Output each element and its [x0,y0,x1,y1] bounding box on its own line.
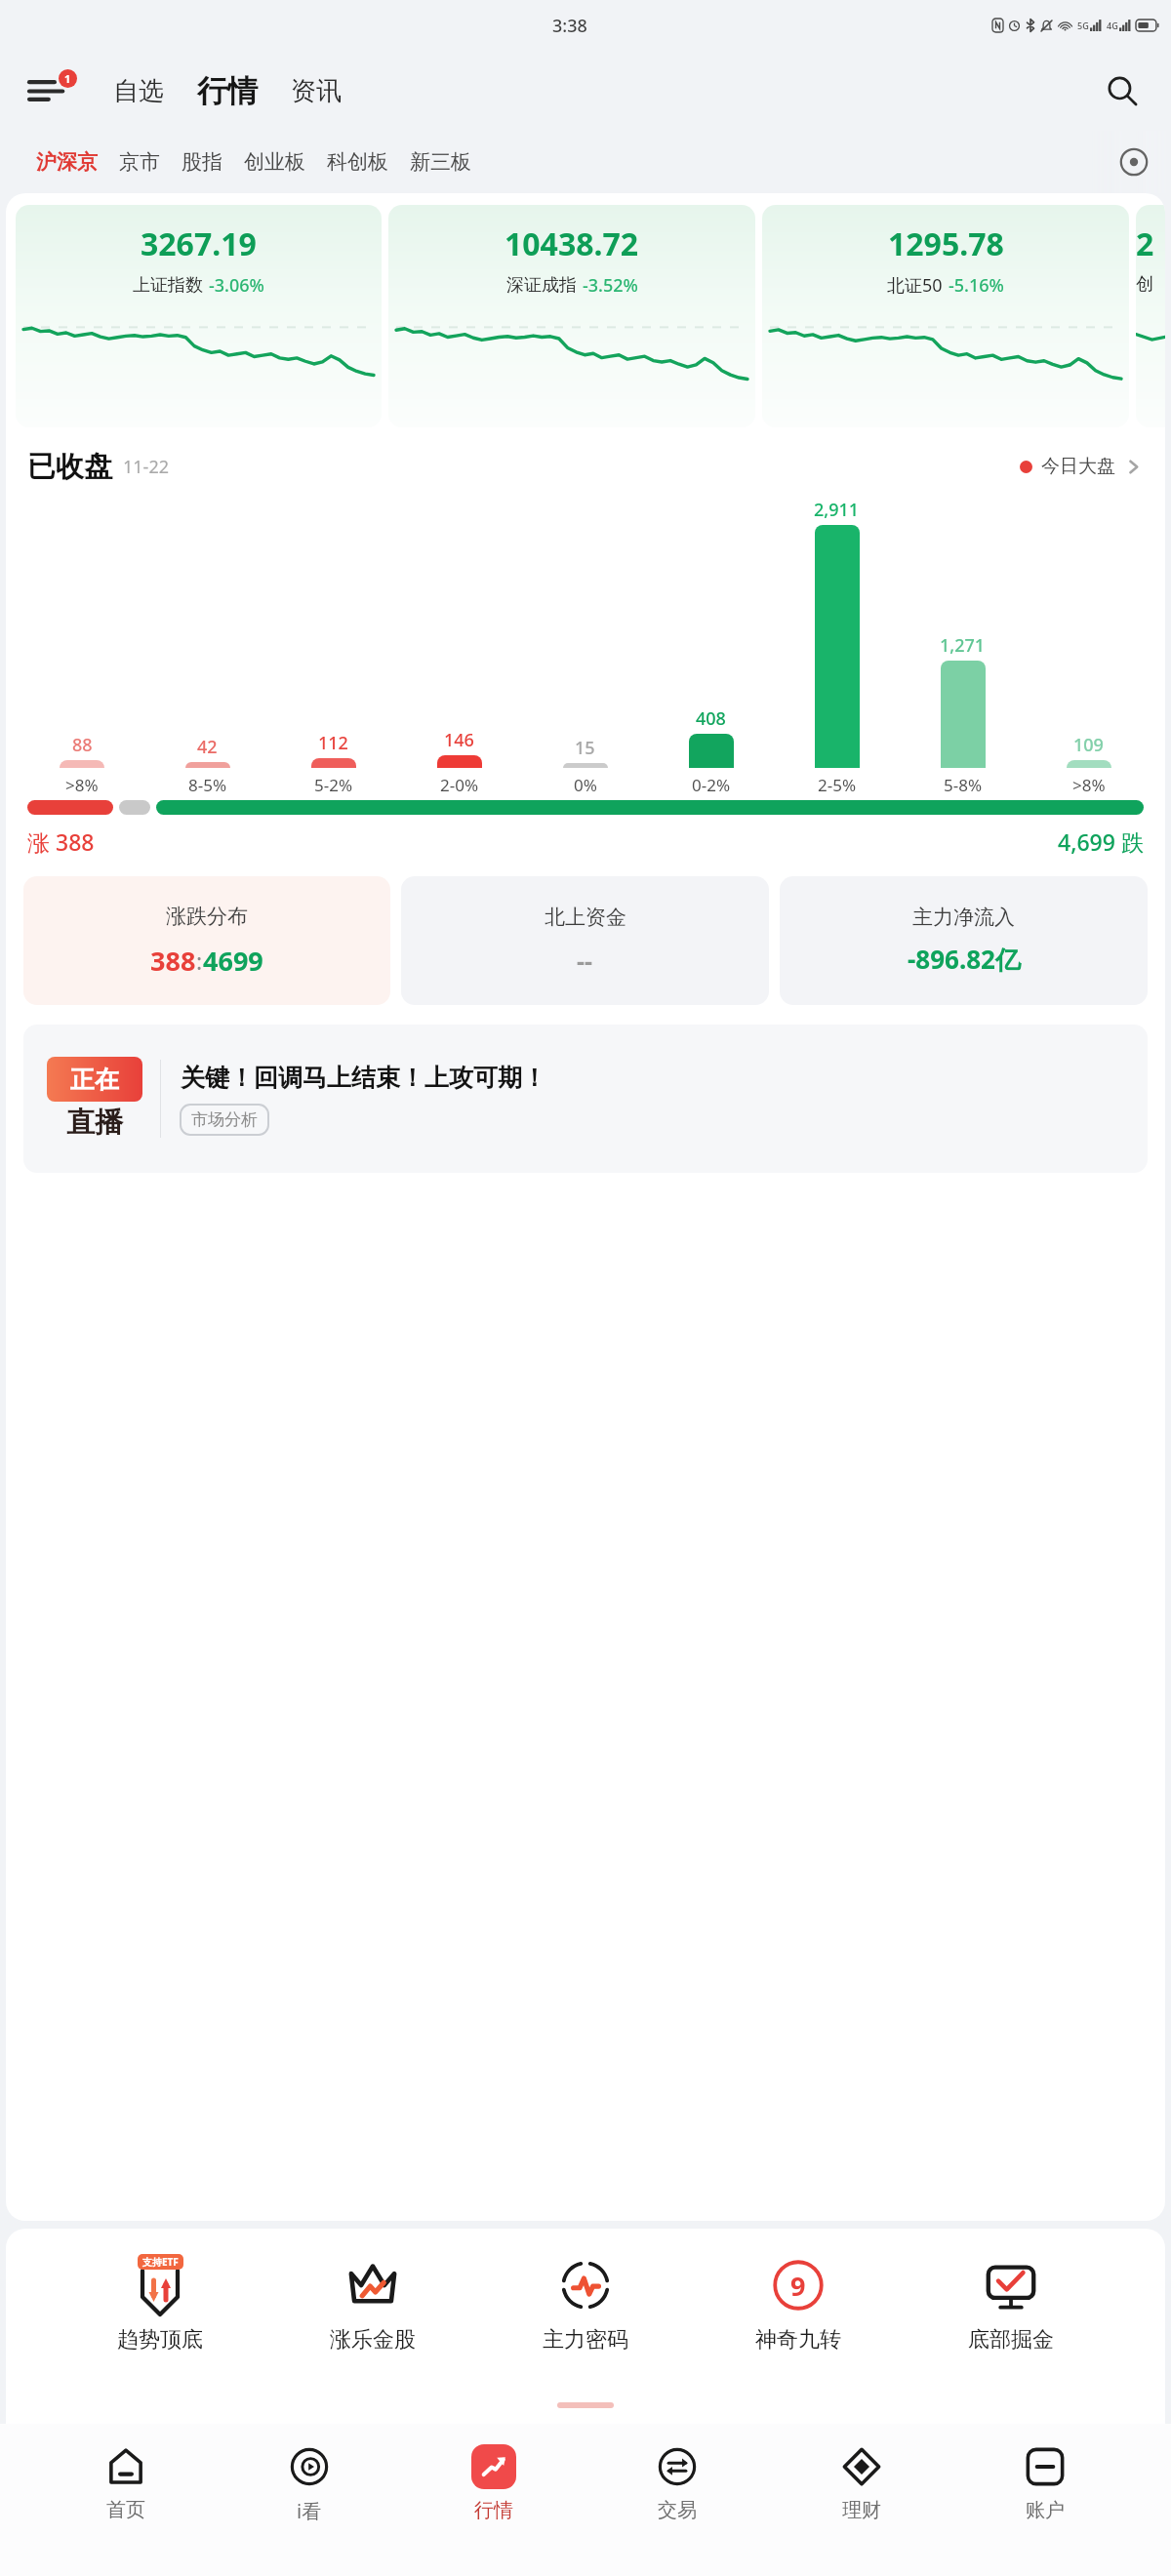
staticText: 北上资金 [545,905,626,930]
staticText: 京市 [119,149,160,175]
staticText: 上证指数 [133,274,203,297]
staticText: 今日大盘 [1041,455,1115,478]
staticText: 正在 [70,1065,119,1095]
button[interactable]: 10438.72 [388,205,755,427]
staticText: 行情 [474,2498,513,2522]
staticText: 146 [444,728,474,752]
staticText: 2-0% [440,774,479,796]
staticText: 5G [1077,20,1089,31]
button[interactable]: Search [1097,65,1148,116]
button[interactable]: 自选 [105,67,172,115]
staticText: 388 [150,943,196,979]
button[interactable]: 主力密码 [527,2252,644,2355]
staticText: >8% [1072,774,1106,796]
button[interactable]: 1295.78 [762,205,1129,427]
staticText: 42 [197,735,218,759]
staticText: 深证成指 [506,274,577,297]
staticText: -896.82亿 [908,942,1021,977]
staticText: 创 [1136,273,1153,296]
staticText: 支持ETF [142,2255,179,2269]
button[interactable]: 京市 [108,141,171,182]
staticText: 沪深京 [36,149,98,175]
button[interactable]: 新三板 [399,141,482,182]
button[interactable]: 资讯 [283,67,349,115]
staticText: 109 [1073,733,1104,757]
staticText: 涨 388 [27,826,95,857]
staticText: 2 [1136,222,1154,265]
button[interactable]: 涨跌分布 [23,876,390,1005]
staticText: 创业板 [244,149,305,175]
staticText: 15 [575,736,595,760]
staticText: 行情 [197,72,258,110]
staticText: 神奇九转 [755,2326,841,2354]
staticText: 2,911 [814,498,860,522]
staticText: 市场分析 [191,1109,258,1130]
staticText: 新三板 [410,149,471,175]
staticText: 0% [574,774,597,796]
staticText: -5.16% [949,273,1004,298]
staticText: 3:38 [552,14,587,38]
staticText: -3.06% [209,273,264,298]
staticText: 账户 [1026,2498,1065,2522]
staticText: 408 [696,706,726,731]
staticText: 10438.72 [505,222,639,265]
button[interactable]: 创业板 [233,141,316,182]
button[interactable]: 底部掘金 [952,2252,1070,2355]
staticText: 1,271 [940,633,986,658]
button[interactable]: Edit tabs [1110,139,1157,185]
staticText: 0-2% [692,774,731,796]
staticText: 11-22 [123,455,169,479]
button[interactable]: 股指 [171,141,233,182]
staticText: 资讯 [291,75,342,107]
staticText: 底部掘金 [968,2326,1054,2354]
button[interactable]: 首页 [67,2441,184,2524]
button[interactable]: 主力净流入 [780,876,1148,1005]
button[interactable]: 2 [1136,205,1165,427]
staticText: 88 [72,733,93,757]
staticText: 首页 [106,2498,145,2522]
button[interactable]: 支持ETF [101,2252,219,2355]
staticText: 5-8% [944,774,983,796]
staticText: 主力密码 [543,2326,628,2354]
staticText: >8% [65,774,99,796]
staticText: 主力净流入 [912,905,1015,930]
staticText: 交易 [658,2498,697,2522]
staticText: 1295.78 [888,222,1004,265]
staticText: 8-5% [188,774,227,796]
staticText: 已收盘 [27,449,112,485]
staticText: 1 [64,71,71,86]
button[interactable]: 账户 [987,2441,1104,2524]
button[interactable]: 3267.19 [16,205,382,427]
button[interactable]: 交易 [619,2441,736,2524]
staticText: 趋势顶底 [117,2326,203,2354]
button[interactable]: 北上资金 [401,876,769,1005]
staticText: 自选 [113,75,164,107]
button[interactable]: 涨乐金股 [314,2252,431,2355]
staticText: 5-2% [314,774,353,796]
button[interactable]: 9 [740,2252,857,2355]
staticText: 2-5% [818,774,857,796]
staticText: 112 [318,731,348,755]
button[interactable]: 理财 [803,2441,920,2524]
staticText: 4,699 跌 [1058,826,1144,857]
staticText: 涨跌分布 [166,904,248,929]
staticText: 涨乐金股 [330,2326,416,2354]
staticText: 科创板 [327,149,388,175]
button[interactable]: 沪深京 [25,141,108,182]
staticText: 理财 [842,2498,881,2522]
staticText: 3267.19 [141,222,257,265]
staticText: 9 [790,2268,806,2304]
button[interactable]: 正在 [23,1025,1148,1173]
staticText: 直播 [66,1105,123,1141]
button[interactable]: 科创板 [316,141,399,182]
staticText: 股指 [182,149,222,175]
button[interactable]: Menu [20,63,74,118]
staticText: 4G [1107,20,1118,31]
staticText: -- [577,944,593,977]
button[interactable]: 行情 [191,68,263,114]
button[interactable]: 今日大盘 [1018,447,1144,486]
button[interactable]: i看 [251,2441,368,2526]
staticText: 4699 [203,943,263,979]
staticText: 北证50 [887,273,943,298]
button[interactable]: 行情 [435,2441,552,2524]
